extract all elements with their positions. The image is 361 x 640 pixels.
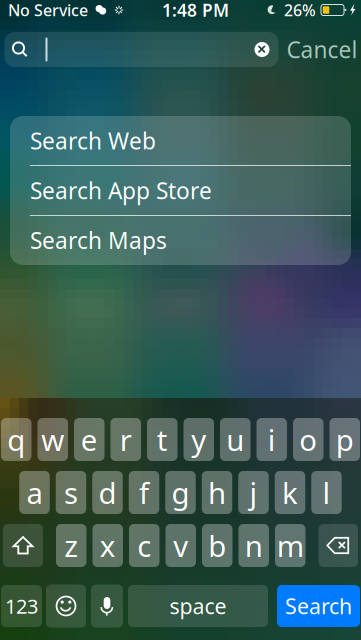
staticText: r bbox=[120, 420, 132, 459]
button[interactable]: i bbox=[256, 418, 287, 461]
staticText: l bbox=[322, 473, 330, 512]
button[interactable]: e bbox=[74, 418, 104, 461]
staticText: w bbox=[41, 420, 64, 459]
button[interactable]: z bbox=[56, 524, 86, 567]
staticText: Search bbox=[285, 592, 352, 620]
button[interactable]: Clear text bbox=[250, 38, 273, 61]
staticText: 1:48 PM bbox=[162, 0, 229, 21]
staticText: q bbox=[7, 420, 25, 459]
button[interactable]: t bbox=[147, 418, 177, 461]
staticText: h bbox=[208, 473, 226, 512]
staticText: Search App Store bbox=[30, 175, 212, 205]
button[interactable]: Search Maps bbox=[10, 216, 351, 265]
staticText: x bbox=[100, 526, 116, 565]
button[interactable]: Cancel bbox=[286, 32, 357, 67]
staticText: f bbox=[139, 473, 149, 512]
button[interactable]: p bbox=[329, 418, 360, 461]
staticText: Search Maps bbox=[30, 225, 167, 255]
button[interactable]: Shift bbox=[3, 524, 43, 567]
button[interactable]: r bbox=[110, 418, 141, 461]
staticText: e bbox=[81, 420, 98, 459]
staticText: d bbox=[98, 473, 116, 512]
button[interactable]: Search bbox=[277, 585, 360, 627]
staticText: i bbox=[268, 420, 276, 459]
button[interactable]: y bbox=[183, 418, 214, 461]
staticText: n bbox=[245, 526, 263, 565]
staticText: b bbox=[208, 526, 226, 565]
staticText: 123 bbox=[5, 593, 38, 619]
button[interactable]: d bbox=[92, 471, 123, 514]
staticText: a bbox=[26, 473, 42, 512]
button[interactable]: o bbox=[293, 418, 323, 461]
button[interactable]: l bbox=[311, 471, 342, 514]
staticText: j bbox=[249, 473, 257, 512]
button[interactable]: s bbox=[56, 471, 86, 514]
staticText: 26% bbox=[284, 0, 316, 21]
staticText: Cancel bbox=[286, 34, 357, 64]
button[interactable]: u bbox=[220, 418, 250, 461]
button[interactable]: j bbox=[238, 471, 269, 514]
button[interactable]: h bbox=[202, 471, 232, 514]
staticText: space bbox=[169, 592, 226, 620]
staticText: c bbox=[137, 526, 151, 565]
button[interactable]: Search App Store bbox=[10, 166, 351, 216]
staticText: t bbox=[157, 420, 168, 459]
staticText: k bbox=[282, 473, 298, 512]
button[interactable]: Delete bbox=[318, 524, 358, 567]
button[interactable]: Search Web bbox=[10, 116, 351, 166]
button[interactable]: Dictate bbox=[91, 584, 123, 627]
staticText: p bbox=[336, 420, 354, 459]
button[interactable]: space bbox=[128, 585, 268, 627]
button[interactable]: w bbox=[37, 418, 68, 461]
button[interactable]: f bbox=[129, 471, 159, 514]
button[interactable]: 123 bbox=[1, 585, 42, 627]
button[interactable]: c bbox=[129, 524, 159, 567]
staticText: v bbox=[173, 526, 188, 565]
staticText: s bbox=[64, 473, 78, 512]
staticText: y bbox=[191, 420, 206, 459]
button[interactable]: Emoji bbox=[46, 584, 86, 627]
staticText: u bbox=[226, 420, 244, 459]
button[interactable]: b bbox=[202, 524, 232, 567]
staticText: z bbox=[64, 526, 78, 565]
button[interactable]: g bbox=[165, 471, 196, 514]
button[interactable]: v bbox=[165, 524, 196, 567]
staticText: o bbox=[299, 420, 317, 459]
staticText: g bbox=[171, 473, 189, 512]
button[interactable]: n bbox=[238, 524, 269, 567]
staticText: No Service bbox=[8, 0, 88, 21]
button[interactable]: k bbox=[275, 471, 305, 514]
staticText: m bbox=[277, 526, 304, 565]
button[interactable]: x bbox=[92, 524, 123, 567]
staticText: Search Web bbox=[30, 126, 156, 156]
button[interactable]: m bbox=[275, 524, 305, 567]
button[interactable]: a bbox=[19, 471, 50, 514]
button[interactable]: q bbox=[1, 418, 31, 461]
